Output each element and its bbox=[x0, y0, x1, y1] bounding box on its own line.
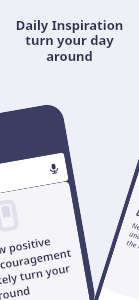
staticText: new positive encouragement likely turn y… bbox=[0, 230, 78, 300]
staticText: Nea unde the la bbox=[125, 221, 139, 252]
staticText: Do bbox=[135, 206, 139, 221]
staticText: Daily Inspiration turn your day around bbox=[0, 16, 139, 65]
